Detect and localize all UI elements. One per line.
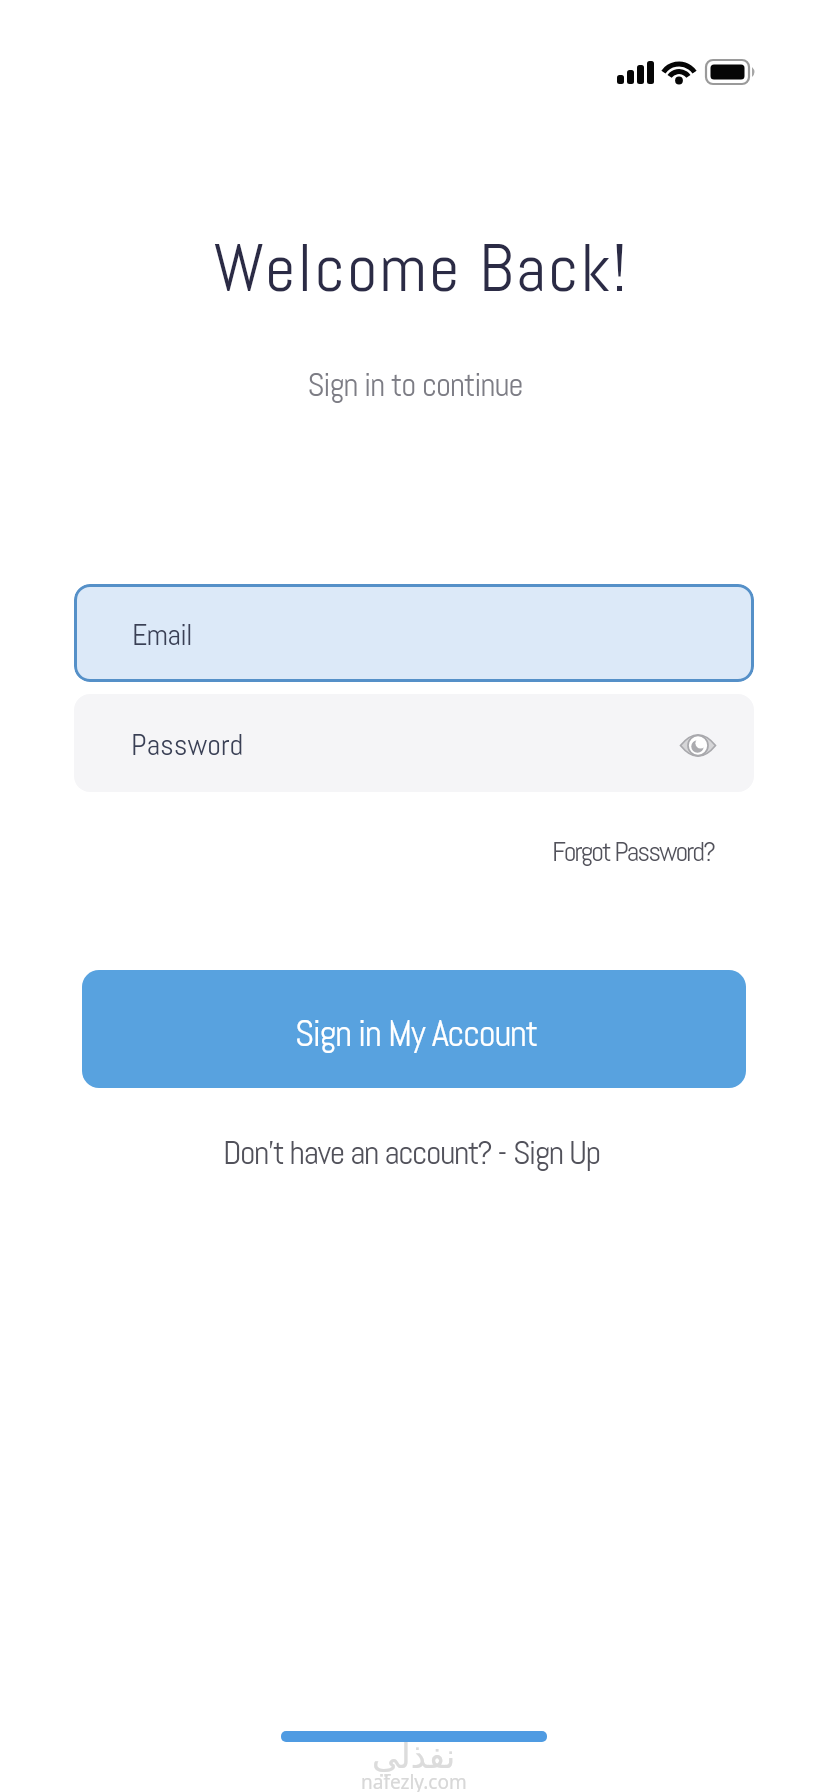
staticText: Email [132, 616, 193, 654]
staticText: Welcome Back! [213, 225, 629, 310]
button[interactable]: Sign in My Account [82, 970, 746, 1088]
button[interactable]: Password [74, 694, 754, 792]
staticText: نفذلي [372, 1736, 456, 1776]
button[interactable] [670, 717, 726, 773]
staticText: nafezly.com [361, 1769, 467, 1792]
button[interactable]: Forgot Password? [552, 834, 714, 870]
staticText: Sign in My Account [295, 1010, 538, 1057]
staticText: Sign in to continue [307, 364, 523, 406]
staticText: Don't have an account? - [223, 1131, 513, 1174]
staticText: Password [131, 726, 244, 764]
button[interactable]: Email [74, 584, 754, 682]
button[interactable]: Sign Up [513, 1131, 600, 1174]
